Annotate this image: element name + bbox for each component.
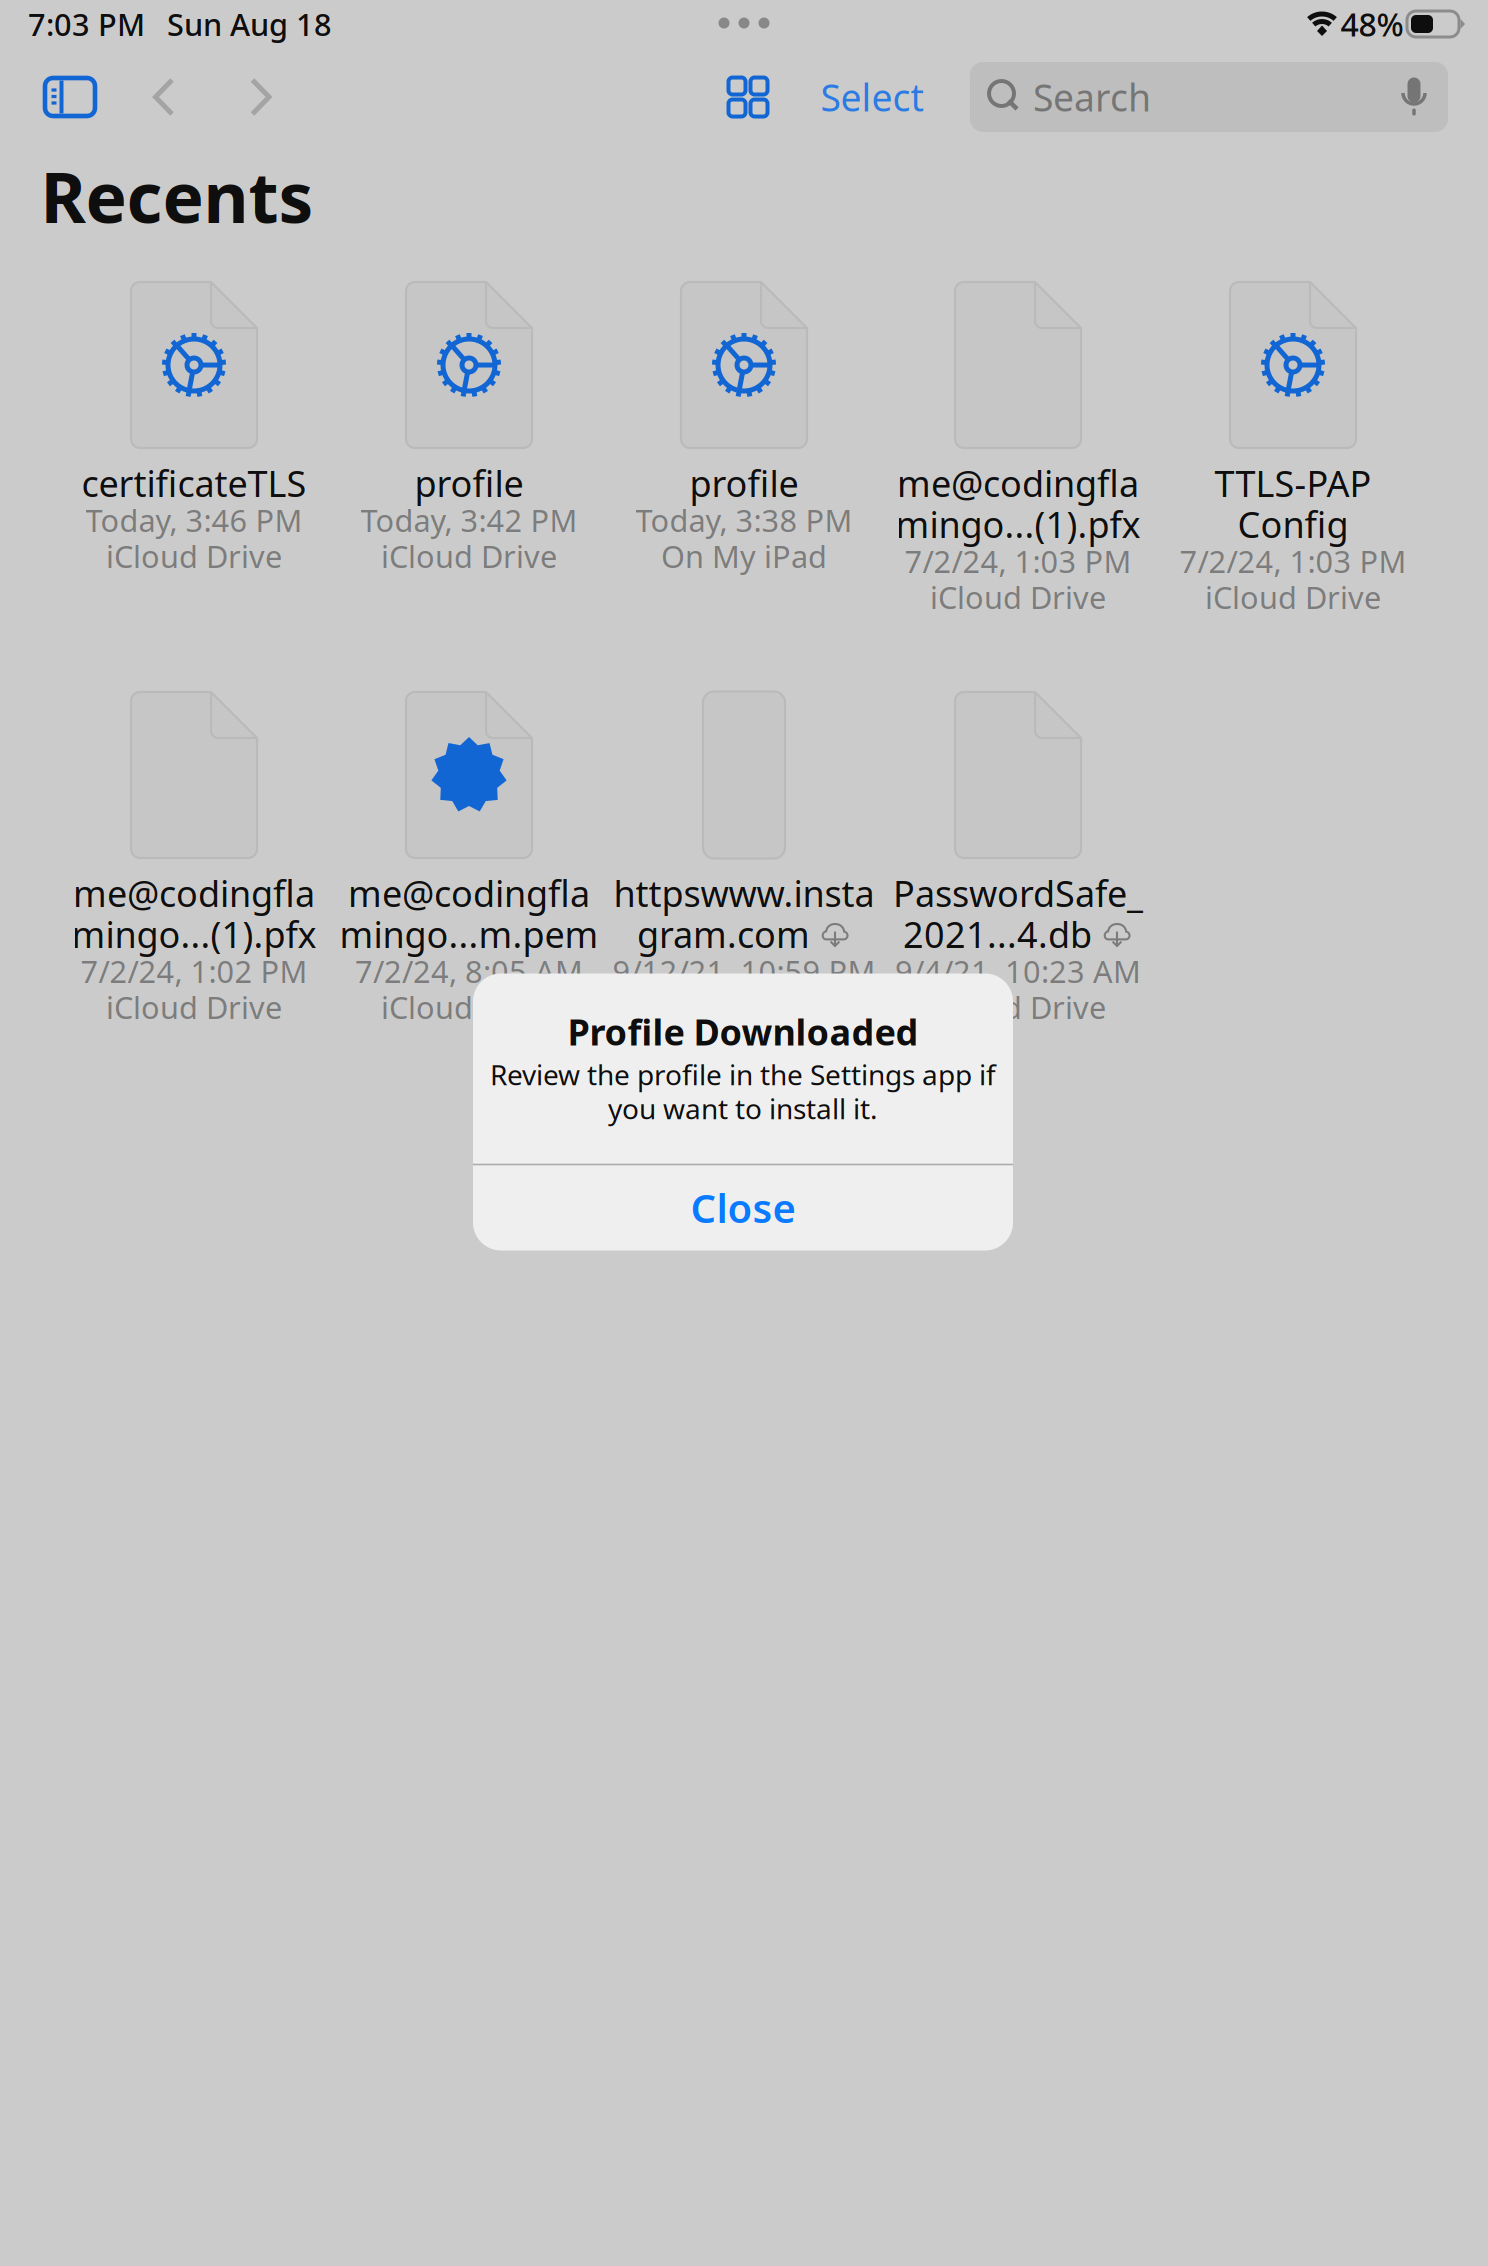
button[interactable]: Show Sidebar — [27, 58, 113, 136]
staticText: Today, 3:42 PM — [360, 500, 577, 540]
staticText: 9/4/21, 10:23 AM — [895, 951, 1141, 991]
staticText: 7/2/24, 1:03 PM — [904, 541, 1131, 581]
staticText: Search — [1033, 72, 1151, 122]
button[interactable]: profile — [607, 282, 881, 622]
button[interactable]: certificateTLS — [57, 282, 331, 622]
button[interactable]: Select — [797, 58, 947, 136]
staticText: Config — [1237, 500, 1348, 548]
button[interactable]: me@codingfla — [332, 692, 606, 1032]
button[interactable]: profile — [332, 282, 606, 622]
staticText: iCloud Drive — [930, 577, 1106, 617]
staticText: you want to install it. — [608, 1090, 878, 1127]
staticText: iCloud Drive — [381, 987, 557, 1027]
button[interactable]: PasswordSafe_ — [881, 692, 1155, 1032]
button[interactable]: Forward — [222, 58, 300, 136]
staticText: mingo...(1).pfx — [71, 910, 316, 958]
staticText: profile — [414, 459, 523, 507]
staticText: On My iPad — [661, 536, 827, 576]
staticText: mingo...m.pem — [339, 910, 598, 958]
staticText: me@codingfla — [73, 869, 315, 917]
staticText: 7/2/24, 1:03 PM — [1179, 541, 1406, 581]
staticText: 48% — [1340, 3, 1403, 45]
staticText: httpswww.insta — [613, 869, 874, 917]
button[interactable]: me@codingfla — [57, 692, 331, 1032]
button[interactable]: Icon View — [709, 58, 787, 136]
staticText: Profile Downloaded — [567, 1008, 918, 1055]
staticText: Select — [820, 72, 923, 122]
button[interactable]: Close — [473, 1164, 1013, 1250]
staticText: 9/12/21, 10:59 PM — [612, 951, 875, 991]
staticText: 2021...4.db — [903, 910, 1092, 958]
staticText: 7/2/24, 1:02 PM — [80, 951, 307, 991]
staticText: 7/2/24, 8:05 AM — [355, 951, 583, 991]
staticText: Sun Aug 18 — [167, 4, 332, 44]
staticText: iCloud Drive — [1205, 577, 1381, 617]
staticText: certificateTLS — [81, 459, 306, 507]
staticText: Close — [690, 1181, 795, 1234]
staticText: gram.com — [637, 910, 810, 958]
button[interactable]: Back — [125, 58, 203, 136]
staticText: PasswordSafe_ — [893, 869, 1143, 917]
staticText: TTLS-PAP — [1214, 459, 1371, 507]
button[interactable]: Search — [970, 62, 1448, 132]
staticText: iCloud Drive — [106, 987, 282, 1027]
staticText: Today, 3:38 PM — [635, 500, 852, 540]
staticText: me@codingfla — [897, 459, 1139, 507]
staticText: On My iPad — [661, 987, 827, 1027]
button[interactable]: httpswww.insta — [607, 692, 881, 1032]
staticText: Recents — [40, 150, 313, 242]
staticText: iCloud Drive — [381, 536, 557, 576]
button[interactable]: TTLS-PAP — [1156, 282, 1430, 622]
staticText: Today, 3:46 PM — [85, 500, 302, 540]
staticText: mingo...(1).pfx — [895, 500, 1140, 548]
staticText: me@codingfla — [348, 869, 590, 917]
staticText: iCloud Drive — [930, 987, 1106, 1027]
staticText: profile — [689, 459, 798, 507]
button[interactable]: me@codingfla — [881, 282, 1155, 622]
staticText: Review the profile in the Settings app i… — [490, 1056, 996, 1093]
staticText: 7:03 PM — [28, 4, 145, 44]
staticText: iCloud Drive — [106, 536, 282, 576]
